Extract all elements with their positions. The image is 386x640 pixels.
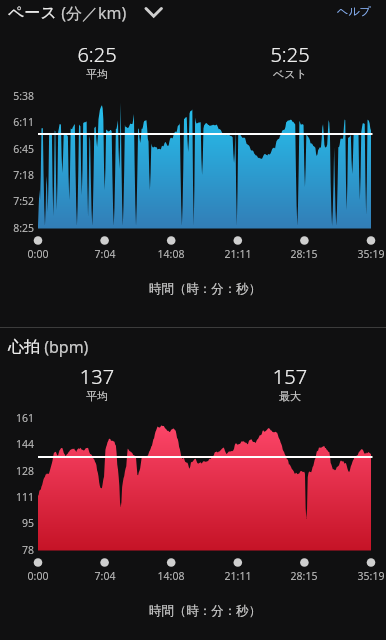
staticText: 128	[0, 464, 34, 478]
staticText: 0:00	[13, 569, 63, 583]
staticText: ヘルプ	[337, 4, 371, 18]
staticText: ペース	[8, 3, 57, 23]
staticText: 平均	[27, 67, 167, 81]
staticText: (bpm)	[40, 336, 89, 358]
staticText: 95	[0, 516, 34, 530]
staticText: 0:00	[13, 247, 63, 261]
staticText: 平均	[27, 389, 167, 403]
staticText: 111	[0, 490, 34, 504]
staticText: 28:15	[279, 569, 329, 583]
staticText: 28:15	[279, 247, 329, 261]
staticText: 7:04	[80, 247, 130, 261]
staticText: 8:25	[0, 221, 34, 235]
button[interactable]: ヘルプ	[337, 4, 371, 18]
staticText: 35:19	[346, 569, 386, 583]
staticText: (分／km)	[57, 2, 127, 24]
staticText: 78	[0, 543, 34, 557]
staticText: 144	[0, 437, 34, 451]
staticText: 157	[220, 363, 360, 390]
staticText: 6:11	[0, 115, 34, 129]
staticText: 6:45	[0, 142, 34, 156]
staticText: 時間（時：分：秒）	[105, 281, 305, 297]
staticText: 35:19	[346, 247, 386, 261]
staticText: 7:52	[0, 194, 34, 208]
staticText: 21:11	[213, 247, 263, 261]
staticText: 21:11	[213, 569, 263, 583]
staticText: 5:25	[220, 41, 360, 68]
staticText: 6:25	[27, 41, 167, 68]
staticText: 7:04	[80, 569, 130, 583]
staticText: 161	[0, 411, 34, 425]
button[interactable]: 心拍	[8, 336, 89, 358]
staticText: 14:08	[146, 247, 196, 261]
button[interactable]: ペース	[8, 2, 127, 24]
staticText: 最大	[220, 389, 360, 403]
staticText: 時間（時：分：秒）	[105, 603, 305, 619]
button[interactable]: Change metric	[143, 2, 165, 24]
staticText: ベスト	[220, 67, 360, 81]
staticText: 14:08	[146, 569, 196, 583]
staticText: 137	[27, 363, 167, 390]
staticText: 7:18	[0, 168, 34, 182]
staticText: 心拍	[8, 337, 40, 357]
staticText: 5:38	[0, 89, 34, 103]
